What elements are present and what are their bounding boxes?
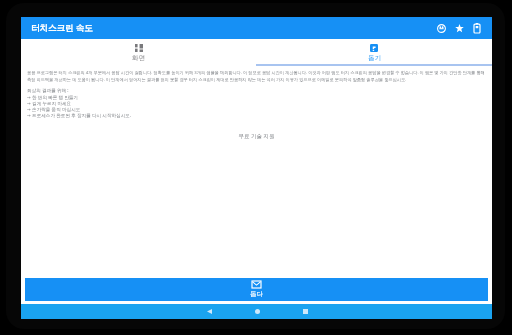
button[interactable]: 화면 [21, 39, 256, 66]
staticText: → 길게 누르지 마세요 [27, 100, 72, 106]
staticText: 무료 기술 지원 [27, 132, 486, 140]
button[interactable]: Favorite [451, 20, 467, 36]
staticText: 최상의 결과를 위해 : [27, 87, 69, 93]
button[interactable]: 돕다 [25, 278, 488, 301]
button[interactable]: Back [196, 304, 222, 319]
button[interactable]: Recents [292, 304, 318, 319]
staticText: → 프로세스가 완료된 후 장치를 다시 시작하십시오. [27, 112, 132, 118]
button[interactable]: Home [244, 304, 270, 319]
button[interactable]: Battery [469, 20, 485, 36]
staticText: → 손가락을 움직 마십시오 [27, 106, 81, 112]
staticText: 응용 프로그램은 터치 스크린의 4개 부분에서 응답 시간이 걸립니다. 정확… [27, 70, 486, 82]
staticText: 돕다 [250, 290, 263, 298]
staticText: 터치스크린 속도 [31, 22, 93, 34]
button[interactable]: Profile [433, 20, 449, 36]
staticText: 화면 [132, 54, 145, 62]
staticText: → 한 번의 빠른 탭 만들기 [27, 94, 79, 100]
staticText: 돕기 [368, 54, 381, 62]
button[interactable]: 돕기 [256, 39, 492, 66]
